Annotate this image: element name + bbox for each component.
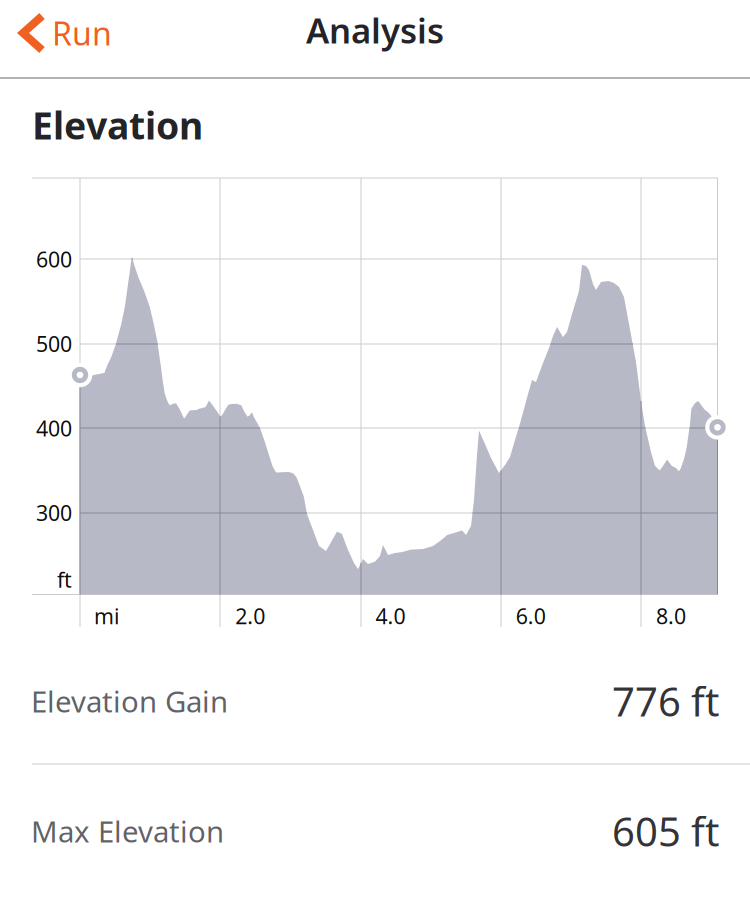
staticText: mi [94, 602, 120, 630]
staticText: 6.0 [516, 602, 546, 630]
staticText: 4.0 [375, 602, 405, 630]
staticText: 776 ft [612, 674, 719, 727]
staticText: 500 [36, 330, 72, 358]
staticText: Run [52, 12, 112, 54]
staticText: 605 ft [612, 804, 719, 857]
staticText: Analysis [306, 7, 444, 53]
staticText: 8.0 [656, 602, 686, 630]
staticText: Elevation Gain [31, 681, 228, 720]
staticText: 600 [36, 245, 72, 273]
staticText: 300 [36, 498, 72, 527]
staticText: ft [57, 565, 72, 594]
staticText: Max Elevation [31, 811, 224, 850]
staticText: Elevation [32, 100, 203, 150]
button[interactable]: Run [0, 0, 126, 66]
staticText: 400 [36, 414, 72, 442]
staticText: 2.0 [235, 602, 265, 630]
